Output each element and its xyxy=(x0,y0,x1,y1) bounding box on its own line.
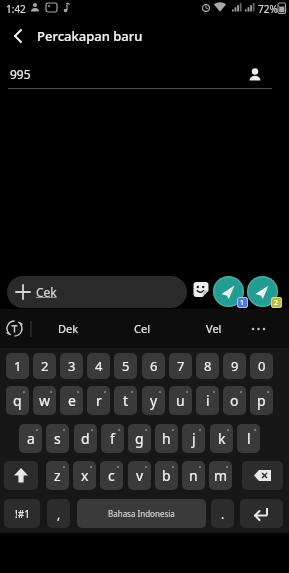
button[interactable] xyxy=(4,461,38,490)
button[interactable]: z xyxy=(46,461,69,490)
button[interactable]: 1 xyxy=(6,353,29,379)
button[interactable]: Cel xyxy=(111,315,173,341)
staticText: 3 xyxy=(68,357,76,375)
button[interactable]: m xyxy=(209,461,232,490)
staticText: f xyxy=(110,429,115,448)
staticText: !#1 xyxy=(15,507,30,521)
staticText: 995 xyxy=(10,66,31,82)
button[interactable]: !#1 xyxy=(4,499,40,528)
staticText: 1 xyxy=(14,357,22,375)
button[interactable]: x xyxy=(73,461,96,490)
button[interactable] xyxy=(242,461,283,490)
staticText: r xyxy=(96,391,102,410)
staticText: Vel xyxy=(206,321,222,336)
button[interactable]: a xyxy=(19,424,42,453)
staticText: x xyxy=(81,466,89,485)
button[interactable] xyxy=(213,276,244,307)
staticText: k xyxy=(218,429,226,448)
button[interactable]: r xyxy=(87,386,110,415)
staticText: , xyxy=(57,506,61,522)
button[interactable]: Vel xyxy=(183,315,245,341)
staticText: 2 xyxy=(274,298,279,308)
staticText: Bahasa Indonesia xyxy=(108,508,175,519)
button[interactable]: n xyxy=(182,461,205,490)
staticText: 7 xyxy=(177,357,185,375)
button[interactable]: v xyxy=(128,461,151,490)
staticText: b xyxy=(162,466,171,485)
button[interactable] xyxy=(4,22,32,50)
button[interactable]: 7 xyxy=(169,353,192,379)
button[interactable]: g xyxy=(128,424,151,453)
staticText: y xyxy=(150,391,158,410)
button[interactable]: Bahasa Indonesia xyxy=(77,499,206,528)
staticText: v xyxy=(136,466,144,485)
button[interactable]: l xyxy=(237,424,260,453)
button[interactable]: o xyxy=(223,386,246,415)
staticText: t xyxy=(123,391,129,410)
button[interactable]: 3 xyxy=(60,353,83,379)
button[interactable]: u xyxy=(169,386,192,415)
staticText: j xyxy=(192,429,196,448)
staticText: g xyxy=(135,429,144,448)
button[interactable]: 8 xyxy=(196,353,219,379)
staticText: h xyxy=(162,429,171,448)
button[interactable]: 6 xyxy=(142,353,165,379)
staticText: z xyxy=(54,466,61,485)
staticText: 2 xyxy=(41,357,49,375)
button[interactable] xyxy=(240,499,283,528)
button[interactable]: e xyxy=(60,386,83,415)
staticText: Cek xyxy=(36,284,57,300)
button[interactable]: s xyxy=(46,424,69,453)
button[interactable]: h xyxy=(155,424,178,453)
staticText: Dek xyxy=(58,321,79,336)
staticText: 1:42 xyxy=(6,2,26,16)
button[interactable]: 9 xyxy=(223,353,246,379)
staticText: w xyxy=(39,391,51,410)
button[interactable]: f xyxy=(101,424,124,453)
staticText: m xyxy=(214,466,228,485)
button[interactable]: 0 xyxy=(250,353,273,379)
staticText: 5 xyxy=(122,357,130,375)
button[interactable]: d xyxy=(74,424,97,453)
button[interactable] xyxy=(247,276,278,307)
staticText: d xyxy=(81,429,90,448)
staticText: s xyxy=(54,429,61,448)
button[interactable] xyxy=(191,279,212,300)
staticText: Percakapan baru xyxy=(37,27,143,45)
button[interactable]: c xyxy=(100,461,123,490)
button[interactable]: 2 xyxy=(33,353,56,379)
staticText: Cel xyxy=(134,321,150,336)
staticText: p xyxy=(257,391,266,410)
button[interactable]: Cek xyxy=(7,276,187,308)
staticText: l xyxy=(247,429,251,448)
staticText: o xyxy=(230,391,239,410)
button[interactable]: w xyxy=(33,386,56,415)
staticText: . xyxy=(221,506,225,522)
staticText: e xyxy=(68,391,76,410)
staticText: 4 xyxy=(95,357,103,375)
button[interactable]: , xyxy=(47,499,70,528)
button[interactable]: q xyxy=(6,386,29,415)
staticText: 0 xyxy=(258,357,266,375)
button[interactable]: b xyxy=(155,461,178,490)
staticText: 72% xyxy=(258,2,278,16)
button[interactable]: k xyxy=(210,424,233,453)
button[interactable]: p xyxy=(250,386,273,415)
staticText: 8 xyxy=(204,357,212,375)
button[interactable]: 4 xyxy=(87,353,110,379)
staticText: c xyxy=(108,466,115,485)
staticText: 6 xyxy=(150,357,158,375)
staticText: 1 xyxy=(240,298,245,308)
staticText: a xyxy=(27,429,35,448)
button[interactable]: y xyxy=(142,386,165,415)
button[interactable]: t xyxy=(114,386,137,415)
button[interactable]: j xyxy=(182,424,205,453)
button[interactable]: . xyxy=(211,499,234,528)
button[interactable]: 5 xyxy=(114,353,137,379)
button[interactable]: i xyxy=(196,386,219,415)
button[interactable]: 995 xyxy=(0,60,289,92)
staticText: i xyxy=(206,391,210,410)
button[interactable]: Dek xyxy=(37,315,99,341)
staticText: 9 xyxy=(231,357,239,375)
staticText: n xyxy=(189,466,198,485)
